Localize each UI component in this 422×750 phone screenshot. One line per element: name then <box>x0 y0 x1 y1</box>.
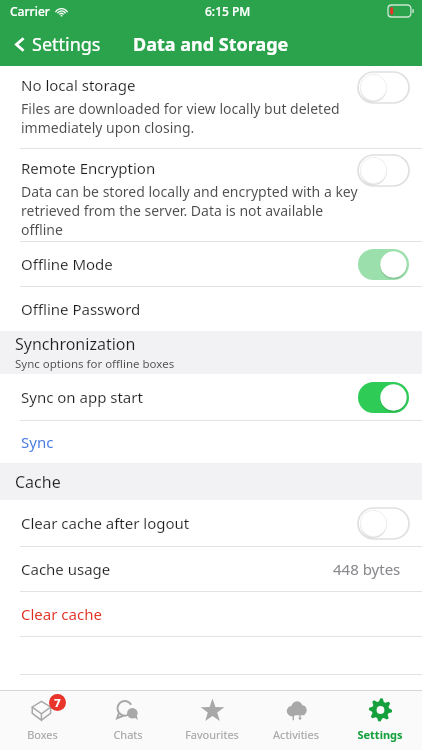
button[interactable]: On <box>358 382 409 413</box>
button[interactable]: Cache usage <box>0 547 422 591</box>
staticText: Boxes <box>27 727 58 742</box>
staticText: Files are downloaded for view locally bu… <box>21 99 340 137</box>
button[interactable]: Clear cache after logout <box>0 500 422 546</box>
staticText: 6:15 PM <box>205 3 251 19</box>
button[interactable]: Settings <box>338 691 422 750</box>
staticText: Cache usage <box>21 559 333 579</box>
button[interactable]: Favourites <box>170 691 254 750</box>
staticText: Settings <box>32 32 101 57</box>
button[interactable]: Offline Mode <box>0 242 422 286</box>
button[interactable]: Off <box>358 155 409 186</box>
staticText: Synchronization <box>15 333 136 355</box>
staticText: 7 <box>54 695 61 710</box>
staticText: Offline Mode <box>21 254 358 274</box>
button[interactable]: Remote Encryption <box>0 149 422 241</box>
button[interactable]: Offline Password <box>0 287 422 331</box>
staticText: Activities <box>273 727 319 742</box>
staticText: 448 bytes <box>333 559 401 579</box>
staticText: Cache <box>15 471 61 493</box>
button[interactable]: Settings <box>8 28 105 61</box>
staticText: Data can be stored locally and encrypted… <box>21 182 358 239</box>
button[interactable]: Chats <box>85 691 170 750</box>
button[interactable]: Activities <box>254 691 338 750</box>
staticText: Chats <box>113 727 143 742</box>
button[interactable]: 7 <box>0 691 85 750</box>
staticText: Favourites <box>185 727 239 742</box>
staticText: Sync <box>21 432 54 452</box>
button[interactable]: Off <box>358 72 409 103</box>
staticText: Sync on app start <box>21 387 358 407</box>
staticText: Sync options for offline boxes <box>15 356 175 372</box>
staticText: Offline Password <box>21 299 141 319</box>
staticText: No local storage <box>21 75 136 95</box>
button[interactable]: Sync on app start <box>0 374 422 420</box>
staticText: Clear cache <box>21 604 102 624</box>
button[interactable]: Off <box>358 508 409 539</box>
staticText: Settings <box>357 727 403 742</box>
staticText: Clear cache after logout <box>21 513 358 533</box>
button[interactable]: Clear cache <box>0 592 422 636</box>
staticText: Remote Encryption <box>21 158 156 178</box>
button[interactable]: Sync <box>0 421 422 463</box>
staticText: Data and Storage <box>133 32 289 57</box>
button[interactable]: No local storage <box>0 66 422 148</box>
staticText: Carrier <box>10 3 50 19</box>
button[interactable]: On <box>358 249 409 280</box>
